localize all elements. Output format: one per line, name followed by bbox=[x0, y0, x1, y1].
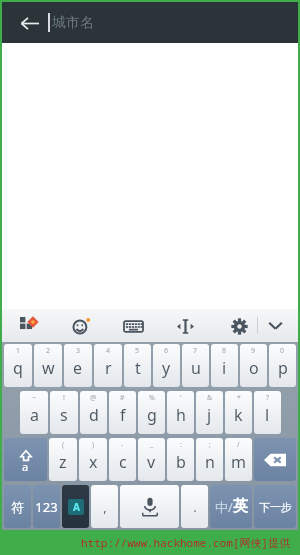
staticText: 5 bbox=[135, 346, 140, 356]
button[interactable]: ! bbox=[50, 391, 78, 434]
staticText: http://www.hackhome.com[网侠]提供 bbox=[81, 535, 290, 550]
staticText: & bbox=[207, 393, 213, 403]
button[interactable]: 123 bbox=[33, 485, 60, 528]
staticText: / bbox=[228, 498, 233, 516]
staticText: d bbox=[89, 404, 99, 426]
staticText: b bbox=[176, 451, 186, 473]
staticText: 4 bbox=[106, 346, 111, 356]
button[interactable]: / bbox=[225, 438, 252, 481]
other: Input method bbox=[62, 485, 89, 528]
staticText: e bbox=[73, 357, 83, 379]
button[interactable]: 2 bbox=[34, 344, 62, 387]
staticText: f bbox=[120, 404, 126, 426]
staticText: ; bbox=[209, 440, 211, 450]
button[interactable]: ' bbox=[167, 391, 194, 434]
staticText: z bbox=[59, 451, 67, 473]
button[interactable]: : bbox=[167, 438, 194, 481]
staticText: 0 bbox=[280, 346, 285, 356]
button[interactable]: 5 bbox=[124, 344, 151, 387]
staticText: 9 bbox=[251, 346, 256, 356]
button[interactable]: ( bbox=[49, 438, 77, 481]
button[interactable]: . bbox=[181, 485, 208, 528]
staticText: ( bbox=[62, 440, 65, 450]
button[interactable]: Hide keyboard bbox=[258, 309, 292, 342]
button[interactable]: ) bbox=[79, 438, 107, 481]
staticText: w bbox=[42, 357, 55, 379]
staticText: 6 bbox=[164, 346, 169, 356]
staticText: / bbox=[237, 440, 240, 450]
staticText: ' bbox=[180, 393, 182, 403]
other: Space bbox=[120, 485, 179, 528]
button[interactable]: ? bbox=[254, 391, 281, 434]
staticText: x bbox=[89, 451, 98, 473]
staticText: v bbox=[147, 451, 156, 473]
staticText: h bbox=[176, 404, 186, 426]
staticText: 7 bbox=[193, 346, 198, 356]
button[interactable]: a bbox=[4, 438, 47, 481]
staticText: 1 bbox=[16, 346, 21, 356]
button[interactable]: 9 bbox=[240, 344, 267, 387]
staticText: 3 bbox=[76, 346, 81, 356]
staticText: 下一步 bbox=[259, 500, 292, 514]
button[interactable]: @ bbox=[80, 391, 107, 434]
staticText: q bbox=[13, 357, 23, 379]
staticText: a bbox=[22, 459, 29, 474]
staticText: % bbox=[149, 393, 155, 403]
button[interactable]: - bbox=[109, 438, 136, 481]
button[interactable]: 下一步 bbox=[254, 485, 296, 528]
button[interactable]: 中 bbox=[210, 485, 252, 528]
staticText: t bbox=[135, 357, 141, 379]
button[interactable]: & bbox=[196, 391, 223, 434]
button[interactable]: # bbox=[109, 391, 136, 434]
button[interactable]: % bbox=[138, 391, 165, 434]
button[interactable]: 8 bbox=[211, 344, 238, 387]
button[interactable]: Space bbox=[120, 485, 179, 528]
button[interactable]: Back bbox=[12, 6, 46, 40]
staticText: a bbox=[30, 404, 39, 426]
staticText: 中 bbox=[215, 499, 228, 515]
button[interactable]: 3 bbox=[64, 344, 92, 387]
staticText: 英 bbox=[233, 497, 248, 516]
staticText: c bbox=[119, 451, 127, 473]
button[interactable]: 0 bbox=[269, 344, 296, 387]
staticText: A bbox=[73, 500, 80, 514]
staticText: l bbox=[265, 404, 270, 426]
staticText: s bbox=[60, 404, 68, 426]
staticText: 符 bbox=[11, 499, 24, 515]
button[interactable]: ; bbox=[196, 438, 223, 481]
staticText: j bbox=[207, 404, 212, 426]
button[interactable]: 7 bbox=[182, 344, 209, 387]
staticText: @ bbox=[90, 393, 97, 403]
button[interactable]: Move cursor bbox=[170, 311, 200, 341]
staticText: 123 bbox=[35, 498, 58, 516]
button[interactable]: Input method bbox=[62, 485, 89, 528]
button[interactable]: Apps bbox=[14, 311, 44, 341]
button[interactable]: _ bbox=[138, 438, 165, 481]
staticText: 8 bbox=[222, 346, 227, 356]
button[interactable]: 符 bbox=[4, 485, 31, 528]
staticText: _ bbox=[150, 440, 154, 450]
staticText: # bbox=[120, 393, 125, 403]
button[interactable]: Backspace bbox=[254, 438, 296, 481]
staticText: k bbox=[234, 404, 243, 426]
button[interactable]: 6 bbox=[153, 344, 180, 387]
button[interactable]: 4 bbox=[94, 344, 122, 387]
staticText: g bbox=[147, 404, 157, 426]
button[interactable]: , bbox=[91, 485, 118, 528]
staticText: , bbox=[103, 498, 107, 516]
button[interactable]: 1 bbox=[4, 344, 32, 387]
staticText: - bbox=[121, 440, 124, 450]
button[interactable]: Keyboard layout bbox=[118, 311, 148, 341]
staticText: o bbox=[249, 357, 259, 379]
staticText: p bbox=[278, 357, 288, 379]
staticText: r bbox=[105, 357, 112, 379]
staticText: 2 bbox=[46, 346, 51, 356]
other: Backspace bbox=[254, 438, 296, 481]
button[interactable]: * bbox=[225, 391, 252, 434]
button[interactable]: Emoji bbox=[66, 311, 96, 341]
button[interactable]: Settings bbox=[224, 311, 254, 341]
staticText: ? bbox=[266, 393, 270, 403]
staticText: : bbox=[180, 440, 182, 450]
button[interactable]: ~ bbox=[20, 391, 48, 434]
staticText: ! bbox=[63, 393, 65, 403]
